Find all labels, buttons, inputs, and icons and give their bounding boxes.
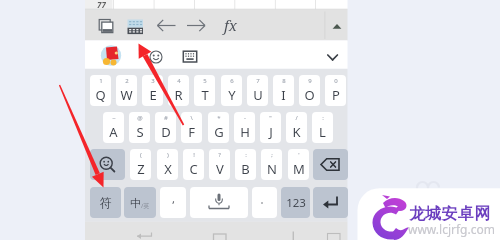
staticText: W: [120, 86, 133, 104]
staticText: ,: [172, 191, 175, 206]
button[interactable]: 6: [221, 75, 242, 106]
button[interactable]: -: [234, 112, 255, 143]
staticText: ~: [112, 114, 116, 122]
button[interactable]: 1: [90, 75, 111, 106]
staticText: V: [216, 160, 224, 178]
staticText: R: [174, 86, 183, 104]
staticText: N: [267, 160, 277, 178]
staticText: ): [167, 151, 169, 159]
button[interactable]: Enter: [313, 187, 348, 218]
staticText: P: [332, 86, 340, 104]
staticText: M: [293, 160, 305, 178]
staticText: fx: [224, 15, 237, 35]
staticText: 7: [256, 77, 260, 85]
staticText: 中: [130, 196, 141, 210]
staticText: 5: [203, 77, 207, 85]
staticText: D: [161, 123, 171, 141]
button[interactable]: :: [235, 149, 256, 180]
button[interactable]: 中: [124, 187, 156, 218]
other: Enter: [313, 187, 348, 218]
staticText: 0: [334, 77, 338, 85]
button[interactable]: !: [183, 149, 204, 180]
staticText: 6: [230, 77, 234, 85]
other: Backspace: [313, 149, 348, 180]
button[interactable]: 。: [252, 187, 277, 218]
staticText: K: [292, 123, 301, 141]
staticText: U: [253, 86, 263, 104]
staticText: ': [298, 151, 300, 159]
button[interactable]: :: [312, 112, 333, 143]
staticText: Y: [228, 86, 236, 104]
button[interactable]: ?: [209, 149, 230, 180]
button[interactable]: ,: [160, 187, 186, 218]
button[interactable]: ~: [103, 112, 124, 143]
staticText: 符: [100, 195, 112, 210]
button[interactable]: 7: [247, 75, 268, 106]
staticText: @: [137, 114, 143, 122]
button[interactable]: 0: [325, 75, 346, 106]
staticText: L: [319, 123, 326, 141]
staticText: C: [189, 160, 198, 178]
staticText: #: [164, 114, 168, 122]
staticText: B: [241, 160, 250, 178]
button[interactable]: @: [129, 112, 150, 143]
staticText: !: [193, 151, 195, 159]
staticText: -: [244, 114, 246, 122]
staticText: 8: [282, 77, 286, 85]
button[interactable]: ": [260, 112, 281, 143]
staticText: J: [269, 123, 273, 141]
staticText: Z: [137, 160, 145, 178]
button[interactable]: /: [286, 112, 307, 143]
button[interactable]: Backspace: [313, 149, 348, 180]
button[interactable]: 4: [168, 75, 189, 106]
staticText: (: [140, 151, 142, 159]
staticText: 9: [308, 77, 312, 85]
button[interactable]: 3: [142, 75, 163, 106]
button[interactable]: #: [155, 112, 176, 143]
staticText: \: [190, 114, 193, 122]
staticText: F: [188, 123, 195, 141]
button[interactable]: \: [181, 112, 202, 143]
staticText: E: [149, 86, 157, 104]
staticText: 3: [151, 77, 155, 85]
staticText: www.lcjrfg.com: [408, 221, 495, 237]
staticText: X: [164, 160, 172, 178]
staticText: H: [240, 123, 250, 141]
button[interactable]: 5: [194, 75, 215, 106]
button[interactable]: Search emoji: [90, 149, 125, 180]
staticText: /英: [141, 202, 150, 210]
staticText: 1: [99, 77, 103, 85]
staticText: 龙城安卓网: [409, 204, 491, 224]
button[interactable]: Formula: [219, 14, 241, 36]
staticText: 123: [286, 195, 306, 211]
staticText: ;: [271, 151, 273, 159]
other: Search emoji: [90, 149, 125, 180]
staticText: 。: [260, 194, 269, 205]
button[interactable]: 符: [90, 187, 121, 218]
button[interactable]: Space: [190, 187, 248, 218]
staticText: ": [269, 114, 272, 122]
button[interactable]: 8: [273, 75, 294, 106]
staticText: O: [304, 86, 315, 104]
button[interactable]: ;: [261, 149, 282, 180]
button[interactable]: 2: [116, 75, 137, 106]
staticText: :: [245, 151, 247, 159]
button[interactable]: 9: [299, 75, 320, 106]
button[interactable]: ': [288, 149, 309, 180]
other: Space: [190, 187, 248, 218]
staticText: I: [281, 86, 286, 104]
staticText: S: [136, 123, 144, 141]
staticText: :: [322, 114, 324, 122]
button[interactable]: (: [130, 149, 151, 180]
staticText: A: [109, 123, 118, 141]
staticText: Q: [95, 86, 106, 104]
staticText: ?: [218, 151, 221, 159]
staticText: T: [201, 86, 209, 104]
staticText: *: [217, 114, 221, 122]
staticText: 2: [125, 77, 129, 85]
button[interactable]: 123: [281, 187, 310, 218]
staticText: /: [295, 114, 298, 122]
button[interactable]: ): [157, 149, 178, 180]
staticText: 77: [97, 0, 106, 9]
button[interactable]: *: [208, 112, 229, 143]
